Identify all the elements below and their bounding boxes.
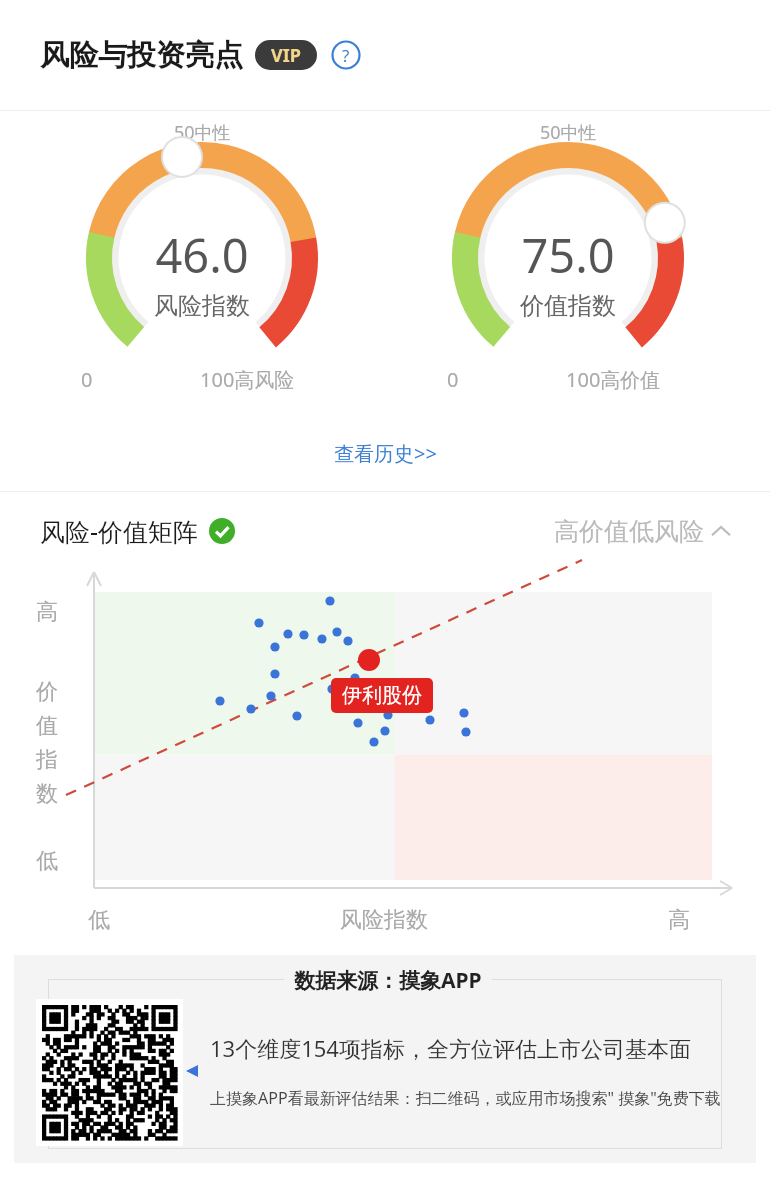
staticText: 数据来源：摸象APP xyxy=(294,966,482,995)
staticText: 高 xyxy=(668,906,690,934)
staticText: 价 xyxy=(36,678,58,706)
staticText: 高 xyxy=(36,598,58,626)
staticText: 伊利股份 xyxy=(342,683,422,708)
staticText: 0 xyxy=(447,366,459,393)
staticText: 13个维度154项指标，全方位评估上市公司基本面 xyxy=(210,1033,691,1063)
staticText: 上摸象APP看最新评估结果：扫二维码，或应用市场搜索" 摸象"免费下载 xyxy=(210,1087,721,1109)
staticText: 风险指数 xyxy=(340,906,428,934)
staticText: 价值指数 xyxy=(520,291,616,321)
staticText: 数 xyxy=(36,780,58,808)
staticText: 低 xyxy=(88,906,110,934)
staticText: 指 xyxy=(36,746,58,774)
staticText: VIP xyxy=(271,43,301,68)
staticText: 100高风险 xyxy=(200,366,295,393)
staticText: 50中性 xyxy=(174,120,231,145)
staticText: 风险指数 xyxy=(154,291,250,321)
button[interactable]: VIP xyxy=(255,40,317,70)
staticText: 高价值低风险 xyxy=(554,516,704,547)
staticText: 50中性 xyxy=(540,120,597,145)
staticText: 75.0 xyxy=(521,223,615,287)
button[interactable]: 伊利股份 xyxy=(331,678,433,713)
button[interactable]: Help xyxy=(331,40,361,70)
staticText: 风险-价值矩阵 xyxy=(40,514,199,548)
staticText: 46.0 xyxy=(155,223,249,287)
staticText: 值 xyxy=(36,712,58,740)
staticText: 风险与投资亮点 xyxy=(40,37,243,74)
staticText: 100高价值 xyxy=(566,366,661,393)
staticText: 0 xyxy=(81,366,93,393)
staticText: 低 xyxy=(36,847,58,875)
staticText: 查看历史>> xyxy=(334,440,437,467)
staticText: ? xyxy=(342,44,350,67)
button[interactable]: 查看历史>> xyxy=(0,416,770,491)
button[interactable]: 高价值低风险 xyxy=(554,516,730,547)
